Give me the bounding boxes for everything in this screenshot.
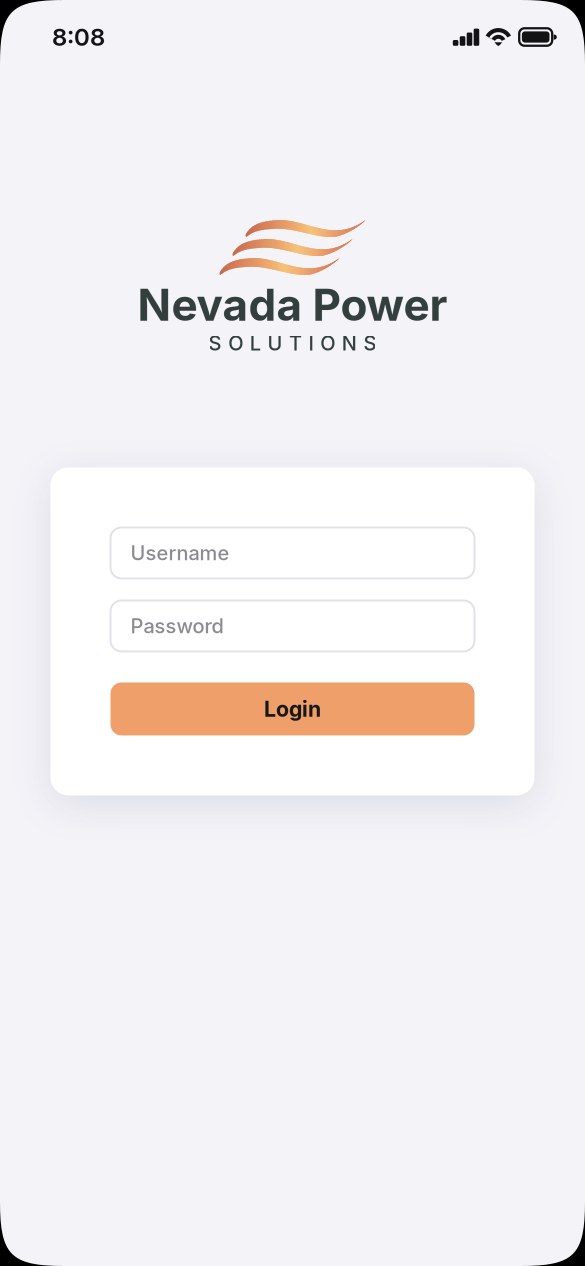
- staticText: Username: [130, 541, 229, 565]
- staticText: SOLUTIONS: [209, 331, 376, 355]
- staticText: Nevada Power: [137, 278, 447, 331]
- staticText: Password: [130, 614, 223, 638]
- staticText: 8:08: [52, 22, 105, 51]
- button[interactable]: Login: [110, 682, 474, 735]
- button[interactable]: Password: [110, 600, 474, 651]
- button[interactable]: Username: [110, 527, 474, 578]
- staticText: Login: [264, 696, 321, 722]
